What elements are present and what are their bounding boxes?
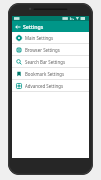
staticText: Browser Settings — [25, 47, 60, 53]
staticText: Bookmark Settings — [25, 71, 65, 77]
button[interactable]: Search Bar Settings — [12, 56, 89, 67]
button[interactable]: Bookmark Settings — [12, 68, 89, 79]
button[interactable]: Back — [12, 21, 23, 32]
staticText: Settings — [23, 23, 44, 30]
button[interactable]: Advanced Settings — [12, 80, 89, 91]
staticText: Main Settings — [25, 35, 54, 41]
button[interactable]: Main Settings — [12, 32, 89, 43]
staticText: Search Bar Settings — [25, 59, 66, 65]
button[interactable]: Browser Settings — [12, 44, 89, 55]
staticText: Advanced Settings — [25, 83, 64, 89]
